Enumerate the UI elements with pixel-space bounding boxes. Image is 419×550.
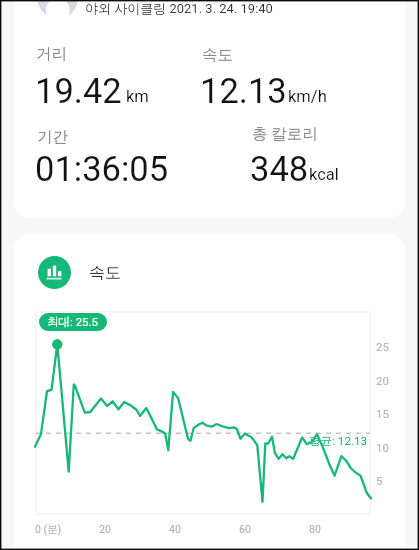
staticText: 80 (309, 523, 321, 535)
staticText: 40 (169, 523, 181, 535)
button[interactable]: 속도 차트 (38, 256, 121, 289)
staticText: 총 칼로리 (252, 124, 318, 144)
button[interactable]: 최대: 25.5 (47, 315, 99, 329)
staticText: 20 (99, 523, 111, 535)
staticText: 속도 (89, 263, 121, 283)
staticText: km/h (288, 87, 327, 106)
other: 속도 차트 (38, 256, 71, 289)
staticText: 20 (376, 374, 389, 387)
staticText: 최대: 25.5 (47, 315, 99, 329)
staticText: 거리 (36, 44, 67, 64)
staticText: 속도 (202, 45, 233, 65)
staticText: 60 (239, 523, 251, 535)
staticText: 야외 사이클링 2021. 3. 24. 19:40 (85, 0, 273, 16)
staticText: kcal (309, 165, 339, 184)
staticText: 12.13 (200, 71, 287, 111)
staticText: 19.42 (35, 71, 122, 111)
staticText: 10 (376, 441, 389, 454)
staticText: 평균: 12.13 (309, 434, 367, 449)
staticText: 348 (250, 149, 309, 189)
staticText: 0 (분) (35, 523, 62, 536)
staticText: 15 (376, 407, 389, 420)
staticText: 기간 (37, 127, 68, 147)
staticText: 01:36:05 (35, 149, 169, 189)
staticText: km (126, 87, 149, 106)
staticText: 25 (376, 340, 389, 353)
staticText: 5 (376, 474, 383, 487)
